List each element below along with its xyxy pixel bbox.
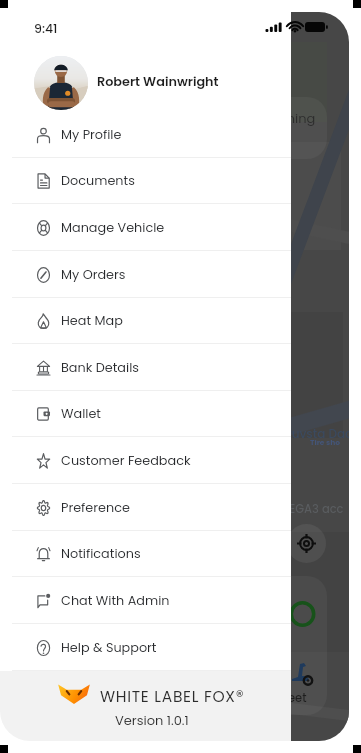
staticText: 9:41 xyxy=(34,20,58,37)
button[interactable]: Chat With Admin xyxy=(0,577,291,624)
button[interactable]: Wallet xyxy=(0,391,291,437)
staticText: My Orders xyxy=(61,266,126,284)
staticText: Preference xyxy=(61,499,130,517)
button[interactable]: Customer Feedback xyxy=(0,437,291,484)
button[interactable]: Preference xyxy=(0,484,291,531)
staticText: Tire sho xyxy=(310,437,341,447)
button[interactable]: Robert Wainwright xyxy=(0,46,291,111)
staticText: ltuvsta Dac xyxy=(284,425,349,442)
button[interactable]: My Profile xyxy=(0,111,291,158)
staticText: WHITE LABEL FOX® xyxy=(100,686,245,708)
staticText: Bank Details xyxy=(61,359,139,377)
button[interactable]: Heat Map xyxy=(0,298,291,344)
staticText: MEGA3 acc xyxy=(279,501,344,517)
button[interactable]: Bank Details xyxy=(0,344,291,391)
button[interactable]: My Orders xyxy=(0,251,291,298)
staticText: Wallet xyxy=(61,405,102,423)
button[interactable]: My location xyxy=(287,524,326,563)
staticText: Robert Wainwright xyxy=(97,73,219,91)
staticText: My Profile xyxy=(61,126,122,144)
staticText: eet xyxy=(288,690,307,706)
staticText: Manage Vehicle xyxy=(61,219,165,237)
button[interactable]: Notifications xyxy=(0,531,291,577)
staticText: Version 1.0.1 xyxy=(115,711,189,729)
button[interactable]: Documents xyxy=(0,158,291,204)
staticText: Documents xyxy=(61,172,135,190)
staticText: Help & Support xyxy=(61,639,157,657)
button[interactable]: Manage Vehicle xyxy=(0,204,291,251)
staticText: Chat With Admin xyxy=(61,592,170,610)
staticText: Customer Feedback xyxy=(61,452,191,470)
button[interactable]: Help & Support xyxy=(0,624,291,671)
staticText: Notifications xyxy=(61,545,141,563)
staticText: earning xyxy=(265,109,316,127)
staticText: Heat Map xyxy=(61,312,123,330)
